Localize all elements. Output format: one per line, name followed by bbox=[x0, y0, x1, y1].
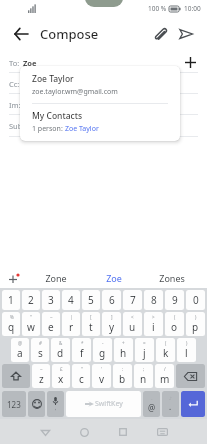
button[interactable]: / bbox=[155, 364, 174, 388]
button[interactable]: - bbox=[93, 338, 112, 362]
staticText: h bbox=[120, 346, 127, 360]
button[interactable]: Home bbox=[73, 421, 95, 443]
staticText: j bbox=[143, 346, 146, 360]
staticText: o bbox=[171, 320, 178, 334]
staticText: x bbox=[58, 372, 64, 386]
button[interactable]: My Contacts bbox=[20, 104, 180, 141]
staticText: ( bbox=[165, 340, 167, 346]
button[interactable]: ) bbox=[186, 312, 205, 336]
staticText: y bbox=[109, 320, 115, 334]
staticText: My Contacts bbox=[32, 110, 83, 122]
staticText: / bbox=[164, 366, 166, 372]
button[interactable]: Im: bbox=[0, 94, 207, 115]
button[interactable]: Shift bbox=[2, 364, 30, 388]
button[interactable]: 0 bbox=[186, 290, 205, 310]
button[interactable]: & bbox=[51, 338, 70, 362]
button[interactable]: - bbox=[143, 391, 160, 417]
button[interactable]: Subject: bbox=[0, 115, 207, 137]
staticText: = bbox=[143, 340, 146, 346]
button[interactable]: Zoe bbox=[85, 268, 143, 288]
staticText: a bbox=[17, 346, 23, 360]
button[interactable]: 9 bbox=[165, 290, 184, 310]
button[interactable]: Zones bbox=[143, 268, 201, 288]
button[interactable]: @ bbox=[11, 338, 29, 362]
button[interactable]: Enter bbox=[181, 391, 205, 417]
staticText: e bbox=[48, 320, 54, 334]
button[interactable]: Add contact bbox=[179, 52, 201, 73]
button[interactable]: ( bbox=[156, 338, 175, 362]
button[interactable]: 1 bbox=[2, 290, 20, 310]
button[interactable]: Hide keyboard bbox=[151, 421, 173, 443]
staticText: ] bbox=[111, 314, 113, 320]
button[interactable]: Emoji bbox=[28, 391, 45, 417]
staticText: z bbox=[39, 372, 44, 386]
button[interactable]: Attach bbox=[147, 21, 173, 47]
button[interactable]: Zoe Taylor bbox=[20, 66, 180, 103]
staticText: ♪ bbox=[169, 396, 172, 401]
staticText: Zoe Taylor bbox=[65, 124, 99, 134]
staticText: w bbox=[27, 320, 35, 334]
staticText: * bbox=[81, 340, 84, 346]
staticText: - bbox=[102, 340, 104, 346]
staticText: p bbox=[192, 320, 199, 334]
button[interactable]: ] bbox=[102, 312, 121, 336]
button[interactable]: Cc: bbox=[0, 73, 207, 94]
staticText: ~ bbox=[50, 314, 53, 320]
button[interactable]: > bbox=[144, 312, 163, 336]
staticText: r bbox=[69, 320, 74, 334]
button[interactable]: ( bbox=[165, 312, 184, 336]
staticText: 4 bbox=[68, 293, 74, 307]
button[interactable]: 6 bbox=[102, 290, 121, 310]
button[interactable]: = bbox=[135, 338, 154, 362]
button[interactable]: 7 bbox=[123, 290, 142, 310]
button[interactable]: : bbox=[113, 364, 132, 388]
button[interactable]: ' bbox=[92, 364, 111, 388]
button[interactable]: 4 bbox=[62, 290, 80, 310]
button[interactable]: 3 bbox=[42, 290, 60, 310]
button[interactable]: Space bbox=[66, 391, 141, 417]
button[interactable]: " bbox=[72, 364, 90, 388]
button[interactable]: Recents bbox=[112, 421, 134, 443]
button[interactable]: 5 bbox=[82, 290, 100, 310]
button[interactable]: 2 bbox=[22, 290, 40, 310]
button[interactable]: Voice input bbox=[47, 391, 64, 417]
button[interactable]: % bbox=[2, 312, 20, 336]
staticText: SwiftKey bbox=[95, 399, 123, 409]
button[interactable]: ) bbox=[177, 338, 196, 362]
staticText: i bbox=[152, 320, 155, 334]
button[interactable]: < bbox=[123, 312, 142, 336]
button[interactable]: Back bbox=[8, 21, 34, 47]
button[interactable]: ; bbox=[134, 364, 153, 388]
button[interactable]: " bbox=[22, 312, 40, 336]
button[interactable]: Send bbox=[173, 21, 199, 47]
button[interactable]: Add word bbox=[0, 268, 26, 288]
staticText: Cc: bbox=[9, 79, 20, 89]
button[interactable]: ♪ bbox=[162, 391, 179, 417]
button[interactable]: 8 bbox=[144, 290, 163, 310]
button[interactable]: + bbox=[114, 338, 133, 362]
button[interactable]: [ bbox=[82, 312, 100, 336]
staticText: d bbox=[57, 346, 64, 360]
button[interactable]: To: bbox=[0, 52, 207, 73]
button[interactable]: Backspace bbox=[176, 364, 205, 388]
button[interactable]: £ bbox=[52, 364, 70, 388]
staticText: 10:00 bbox=[184, 4, 201, 13]
button[interactable]: | bbox=[62, 312, 80, 336]
staticText: ~ bbox=[40, 366, 43, 372]
staticText: 7 bbox=[130, 293, 136, 307]
staticText: To: bbox=[9, 58, 20, 68]
button[interactable]: 123 bbox=[2, 391, 26, 417]
button[interactable]: ~ bbox=[42, 312, 60, 336]
button[interactable]: Zone bbox=[26, 268, 85, 288]
staticText: 9 bbox=[172, 293, 178, 307]
button[interactable]: * bbox=[72, 338, 91, 362]
staticText: Compose bbox=[40, 25, 99, 43]
staticText: u bbox=[129, 320, 136, 334]
button[interactable]: # bbox=[31, 338, 49, 362]
staticText: zoe.taylor.wm@gmail.com bbox=[32, 87, 118, 97]
staticText: k bbox=[163, 346, 169, 360]
staticText: " bbox=[81, 366, 83, 372]
button[interactable]: Back bbox=[34, 421, 56, 443]
staticText: Zones bbox=[159, 272, 185, 284]
button[interactable]: ~ bbox=[32, 364, 50, 388]
